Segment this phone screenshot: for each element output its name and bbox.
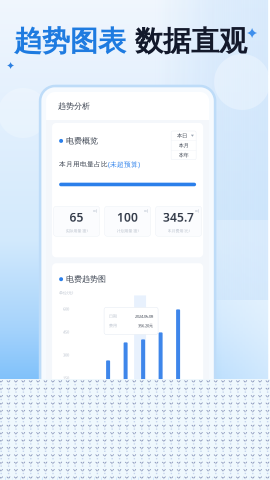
staticText: 日期 bbox=[109, 314, 117, 319]
staticText: 450 bbox=[63, 329, 69, 335]
staticText: 本月费用(元) bbox=[168, 228, 190, 233]
button[interactable]: 65 bbox=[54, 206, 100, 236]
button[interactable]: 本年 bbox=[171, 150, 196, 160]
button[interactable]: 本月 bbox=[171, 141, 196, 150]
staticText: 本年 bbox=[179, 152, 189, 158]
staticText: 65 bbox=[70, 209, 84, 225]
staticText: 计划用量(度) bbox=[117, 228, 139, 233]
staticText: 本日 bbox=[177, 132, 187, 139]
staticText: 数据直观 bbox=[135, 24, 247, 58]
staticText: 本月 bbox=[179, 142, 189, 149]
staticText: 600 bbox=[63, 306, 69, 312]
button[interactable]: 本日 bbox=[171, 131, 196, 140]
staticText: 趋势图表 bbox=[14, 24, 126, 58]
staticText: 电费概览 bbox=[66, 136, 98, 146]
button[interactable]: 100 bbox=[105, 206, 151, 236]
staticText: 本月用电量占比 bbox=[59, 160, 108, 168]
staticText: 356.20元 bbox=[138, 323, 153, 328]
button[interactable]: 345.7 bbox=[156, 206, 202, 236]
staticText: 电费趋势图 bbox=[66, 274, 106, 284]
staticText: 费用 bbox=[109, 323, 117, 328]
staticText: 2024-06-08 bbox=[135, 314, 153, 319]
staticText: 单位(元) bbox=[59, 290, 73, 295]
staticText: 实际用量(度) bbox=[66, 228, 88, 233]
staticText: 150 bbox=[63, 375, 69, 381]
staticText: (未超预算) bbox=[108, 160, 140, 169]
staticText: 300 bbox=[63, 352, 69, 358]
staticText: 趋势分析 bbox=[58, 101, 90, 111]
staticText: 100 bbox=[117, 209, 138, 225]
staticText: 345.7 bbox=[163, 209, 194, 225]
